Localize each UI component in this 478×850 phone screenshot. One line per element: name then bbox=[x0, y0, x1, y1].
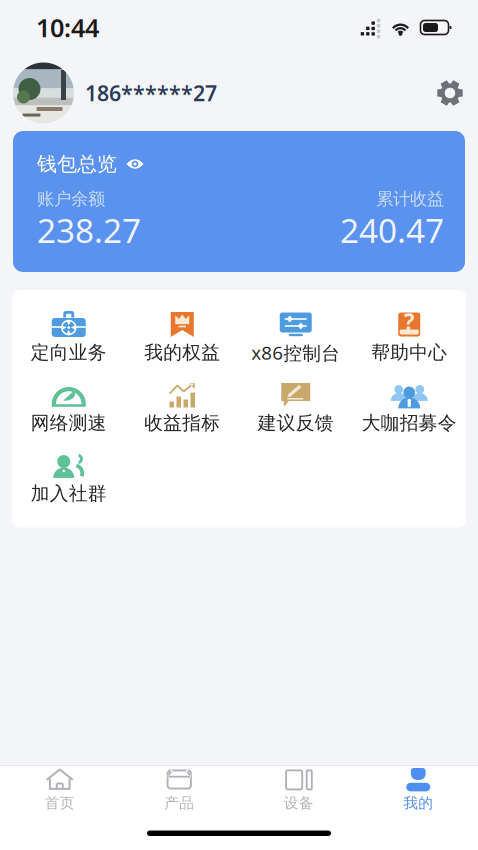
staticText: ? bbox=[404, 306, 415, 336]
staticText: 首页 bbox=[45, 794, 75, 812]
staticText: 我的 bbox=[403, 794, 433, 812]
button[interactable]: Settings bbox=[433, 76, 467, 110]
staticText: 186******27 bbox=[85, 79, 217, 107]
button[interactable]: 我的权益 bbox=[125, 312, 239, 382]
button[interactable]: 收益指标 bbox=[125, 382, 239, 453]
staticText: 设备 bbox=[284, 794, 314, 812]
staticText: 238.27 bbox=[37, 208, 141, 252]
button[interactable]: 我的 bbox=[358, 766, 478, 814]
button[interactable]: 大咖招募令 bbox=[352, 382, 466, 453]
button[interactable]: 加入社群 bbox=[12, 453, 125, 523]
staticText: 收益指标 bbox=[144, 411, 220, 434]
staticText: 10:44 bbox=[36, 11, 99, 44]
staticText: 建议反馈 bbox=[258, 411, 334, 434]
staticText: 大咖招募令 bbox=[362, 411, 457, 434]
staticText: 账户余额 bbox=[37, 188, 105, 210]
staticText: 定向业务 bbox=[31, 341, 107, 364]
staticText: 产品 bbox=[164, 794, 194, 812]
staticText: 钱包总览 bbox=[37, 152, 117, 176]
button[interactable]: 设备 bbox=[239, 766, 358, 814]
button[interactable]: ? bbox=[352, 312, 466, 382]
button[interactable]: 建议反馈 bbox=[239, 382, 352, 453]
staticText: x86控制台 bbox=[251, 340, 340, 365]
staticText: 加入社群 bbox=[31, 482, 107, 505]
button[interactable]: 186******27 bbox=[13, 62, 217, 123]
staticText: 我的权益 bbox=[144, 341, 220, 364]
staticText: 累计收益 bbox=[376, 188, 444, 210]
button[interactable]: 定向业务 bbox=[12, 312, 125, 382]
button[interactable]: x86控制台 bbox=[239, 312, 352, 382]
button[interactable]: 网络测速 bbox=[12, 382, 125, 453]
staticText: 网络测速 bbox=[31, 411, 107, 434]
staticText: 240.47 bbox=[340, 208, 444, 252]
button[interactable]: 首页 bbox=[0, 766, 119, 814]
staticText: 帮助中心 bbox=[371, 341, 447, 364]
button[interactable]: 产品 bbox=[119, 766, 239, 814]
